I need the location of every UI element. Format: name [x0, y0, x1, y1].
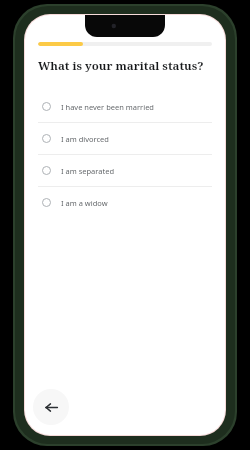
button[interactable]: I am separated: [38, 155, 212, 186]
staticText: I have never been married: [61, 102, 154, 112]
staticText: What is your marital status?: [38, 58, 204, 74]
button[interactable]: I am a widow: [38, 187, 212, 218]
staticText: I am separated: [61, 166, 115, 176]
button[interactable]: I have never been married: [38, 91, 212, 122]
button[interactable]: Back: [33, 389, 69, 425]
staticText: I am a widow: [61, 198, 108, 208]
button[interactable]: I am divorced: [38, 123, 212, 154]
staticText: I am divorced: [61, 134, 109, 144]
